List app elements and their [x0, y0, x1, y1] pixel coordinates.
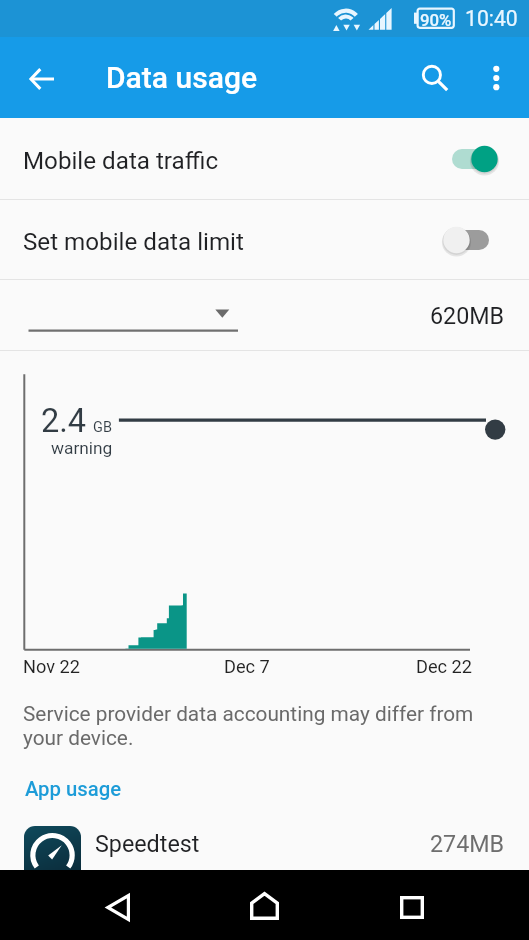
button[interactable]: Back [94, 883, 142, 931]
staticText: Set mobile data limit [23, 228, 244, 256]
staticText: Speedtest [95, 830, 200, 857]
staticText: 10:40 [465, 6, 518, 31]
staticText: 90% [420, 10, 452, 30]
staticText: Dec 7 [224, 656, 270, 677]
staticText: 620MB [430, 302, 505, 329]
staticText: warning [51, 438, 113, 458]
staticText: Nov 22 [23, 656, 80, 677]
staticText: Dec 22 [416, 656, 473, 677]
button[interactable]: Recent apps [388, 883, 436, 931]
button[interactable]: App usage [25, 777, 122, 801]
staticText: GB [93, 419, 112, 436]
staticText: Mobile data traffic [23, 147, 219, 175]
button[interactable]: Search [411, 54, 459, 102]
staticText: App usage [25, 777, 122, 801]
staticText: 2.4 [41, 402, 87, 440]
button[interactable]: Set mobile data limit [0, 200, 529, 279]
button[interactable]: Navigate up [18, 55, 66, 103]
button[interactable]: Data limit period [24, 290, 244, 340]
button[interactable]: Speedtest [0, 826, 529, 896]
button[interactable]: Mobile data traffic [0, 118, 529, 199]
staticText: Service provider data accounting may dif… [23, 702, 474, 750]
staticText: 274MB [430, 830, 505, 857]
staticText: Data usage [106, 60, 258, 95]
button[interactable]: More options [472, 54, 520, 102]
button[interactable]: Home [240, 882, 288, 930]
